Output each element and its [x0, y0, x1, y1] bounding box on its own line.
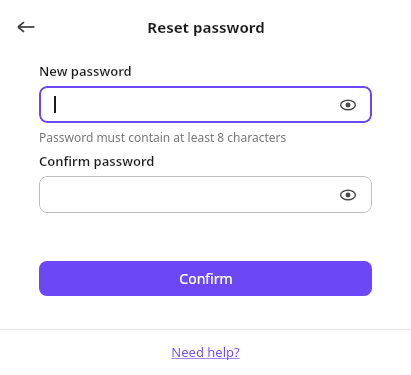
- button[interactable]: Show new password: [338, 95, 358, 115]
- button[interactable]: Confirm: [39, 261, 372, 296]
- staticText: Reset password: [147, 17, 265, 37]
- button[interactable]: Show new password: [39, 86, 372, 123]
- staticText: New password: [39, 62, 132, 80]
- staticText: Password must contain at least 8 charact…: [39, 129, 287, 145]
- staticText: Need help?: [171, 343, 240, 361]
- button[interactable]: Need help?: [171, 343, 240, 361]
- button[interactable]: Back: [14, 15, 38, 39]
- staticText: Confirm: [179, 269, 233, 288]
- button[interactable]: Show confirm password: [39, 176, 372, 213]
- button[interactable]: Show confirm password: [338, 185, 358, 205]
- staticText: Confirm password: [39, 152, 155, 170]
